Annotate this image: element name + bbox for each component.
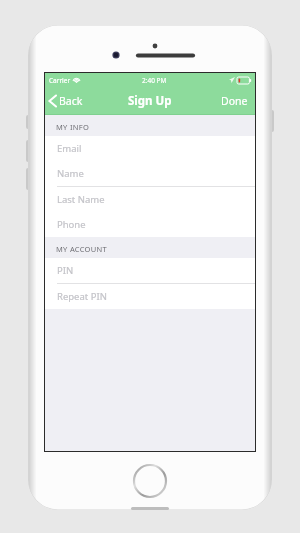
staticText: Back <box>59 94 83 108</box>
staticText: Sign Up <box>128 93 172 109</box>
button[interactable]: Email <box>45 136 255 161</box>
staticText: Email <box>57 142 82 155</box>
button[interactable]: Back <box>45 87 93 114</box>
button[interactable]: Last Name <box>45 187 255 212</box>
staticText: Phone <box>57 218 86 231</box>
button[interactable]: Name <box>45 161 255 187</box>
staticText: MY INFO <box>56 122 90 132</box>
staticText: Carrier <box>49 76 71 85</box>
button[interactable]: PIN <box>45 258 255 284</box>
staticText: PIN <box>57 264 74 277</box>
staticText: 2:40 PM <box>142 76 167 85</box>
staticText: Name <box>57 167 84 180</box>
button[interactable]: Phone <box>45 212 255 237</box>
staticText: Done <box>221 94 248 108</box>
button[interactable]: Repeat PIN <box>45 284 255 309</box>
staticText: Last Name <box>57 193 105 206</box>
staticText: MY ACCOUNT <box>56 244 108 254</box>
button[interactable]: Done <box>214 87 255 114</box>
staticText: Repeat PIN <box>57 290 107 303</box>
